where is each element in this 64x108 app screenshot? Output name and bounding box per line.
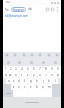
button[interactable]: ?123 xyxy=(3,90,13,97)
staticText: To xyxy=(5,7,9,11)
staticText: i xyxy=(46,73,47,77)
button[interactable]: 7 xyxy=(37,66,43,72)
button[interactable]: Keyboard tool xyxy=(22,53,26,57)
staticText: r xyxy=(21,73,23,77)
button[interactable]: j xyxy=(40,78,46,84)
staticText: ?123 xyxy=(6,92,11,95)
button[interactable]: Expense xyxy=(13,7,24,12)
staticText: v xyxy=(30,85,32,89)
staticText: c xyxy=(24,85,26,89)
staticText: n xyxy=(42,85,44,89)
button[interactable]: u xyxy=(37,72,43,78)
staticText: 4 xyxy=(21,67,23,71)
button[interactable]: a xyxy=(6,78,11,84)
button[interactable]: Keyboard tool xyxy=(55,53,59,57)
staticText: 3 xyxy=(15,67,17,71)
staticText: 8 xyxy=(45,67,47,71)
staticText: 1 xyxy=(5,67,7,71)
button[interactable]: Attach xyxy=(45,7,50,12)
button[interactable]: s xyxy=(11,78,16,84)
staticText: o xyxy=(51,73,53,77)
staticText: 0 xyxy=(57,67,59,71)
staticText: z xyxy=(13,85,15,89)
button[interactable]: b xyxy=(34,84,40,90)
button[interactable]: Suggestion xyxy=(49,58,61,66)
staticText: t xyxy=(27,73,29,77)
staticText: 7 xyxy=(39,67,41,71)
staticText: 5 xyxy=(27,67,29,71)
staticText: h xyxy=(36,79,38,83)
button[interactable]: w xyxy=(8,72,13,78)
staticText: bill@example.com xyxy=(5,14,29,18)
button[interactable]: i xyxy=(43,72,49,78)
staticText: Expense xyxy=(13,8,24,12)
button[interactable]: 9 xyxy=(49,66,55,72)
button[interactable]: 6 xyxy=(31,66,37,72)
button[interactable]: z xyxy=(11,84,16,90)
staticText: w xyxy=(9,73,12,77)
staticText: m xyxy=(48,85,51,89)
button[interactable]: v xyxy=(28,84,34,90)
button[interactable]: n xyxy=(40,84,46,90)
button[interactable]: 1 xyxy=(3,66,8,72)
button[interactable]: . xyxy=(46,90,52,97)
staticText: j xyxy=(43,79,44,83)
button[interactable]: x xyxy=(16,84,22,90)
staticText: d xyxy=(18,79,20,83)
staticText: 6 xyxy=(33,67,35,71)
staticText: s xyxy=(13,79,15,83)
button[interactable]: y xyxy=(31,72,37,78)
button[interactable]: c xyxy=(22,84,28,90)
staticText: g xyxy=(30,79,32,83)
button[interactable]: h xyxy=(34,78,40,84)
button[interactable]: Keyboard tool xyxy=(5,53,9,57)
button[interactable]: Suggestion xyxy=(37,58,49,66)
button[interactable]: p xyxy=(55,72,61,78)
staticText: a xyxy=(8,79,10,83)
staticText: 9 xyxy=(51,67,53,71)
button[interactable]: More options xyxy=(55,7,60,12)
button[interactable]: 3 xyxy=(13,66,19,72)
staticText: p xyxy=(57,73,59,77)
button[interactable]: Keyboard tool xyxy=(30,53,34,57)
button[interactable]: o xyxy=(49,72,55,78)
button[interactable]: 0 xyxy=(55,66,61,72)
button[interactable]: f xyxy=(22,78,28,84)
button[interactable]: k xyxy=(46,78,52,84)
button[interactable]: Keyboard tool xyxy=(38,53,42,57)
button[interactable]: Suggestion xyxy=(3,58,14,66)
button[interactable]: l xyxy=(52,78,58,84)
button[interactable]: q xyxy=(3,72,8,78)
button[interactable]: 4 xyxy=(19,66,25,72)
button[interactable]: Suggestion xyxy=(14,58,25,66)
staticText: . xyxy=(49,92,50,96)
button[interactable]: Suggestion xyxy=(25,58,37,66)
staticText: y xyxy=(33,73,35,77)
button[interactable]: e xyxy=(13,72,19,78)
button[interactable]: g xyxy=(28,78,34,84)
staticText: f xyxy=(24,79,26,83)
staticText: l xyxy=(55,79,56,83)
staticText: k xyxy=(48,79,50,83)
button[interactable]: d xyxy=(16,78,22,84)
staticText: 2 xyxy=(10,67,12,71)
button[interactable]: 2 xyxy=(8,66,13,72)
staticText: b xyxy=(36,85,38,89)
button[interactable]: Keyboard tool xyxy=(13,53,17,57)
staticText: q xyxy=(5,73,7,77)
staticText: x xyxy=(18,85,20,89)
staticText: u xyxy=(39,73,41,77)
button[interactable]: 8 xyxy=(43,66,49,72)
button[interactable]: Keyboard tool xyxy=(47,53,51,57)
button[interactable]: Send xyxy=(50,7,55,12)
button[interactable]: r xyxy=(19,72,25,78)
staticText: e xyxy=(15,73,17,77)
button[interactable]: m xyxy=(46,84,52,90)
button[interactable]: t xyxy=(25,72,31,78)
button[interactable]: 5 xyxy=(25,66,31,72)
